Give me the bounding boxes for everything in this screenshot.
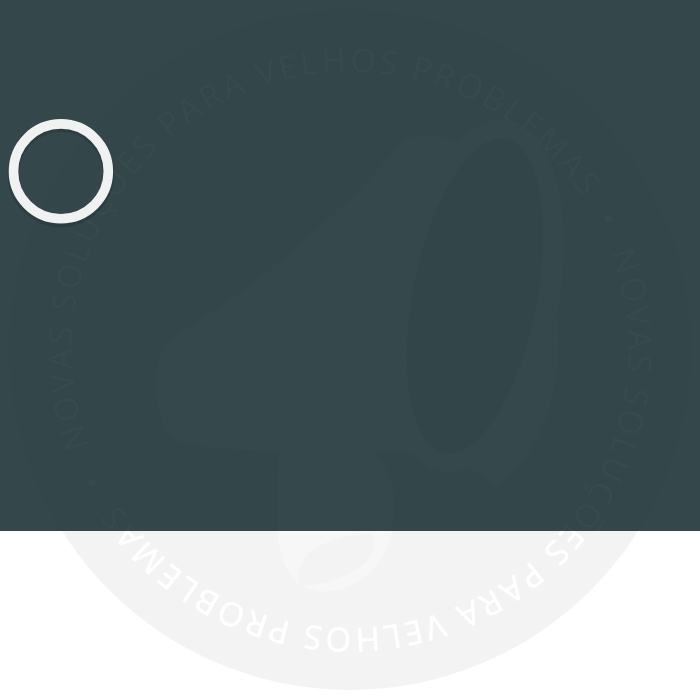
button[interactable]: Loading (4, 114, 118, 228)
